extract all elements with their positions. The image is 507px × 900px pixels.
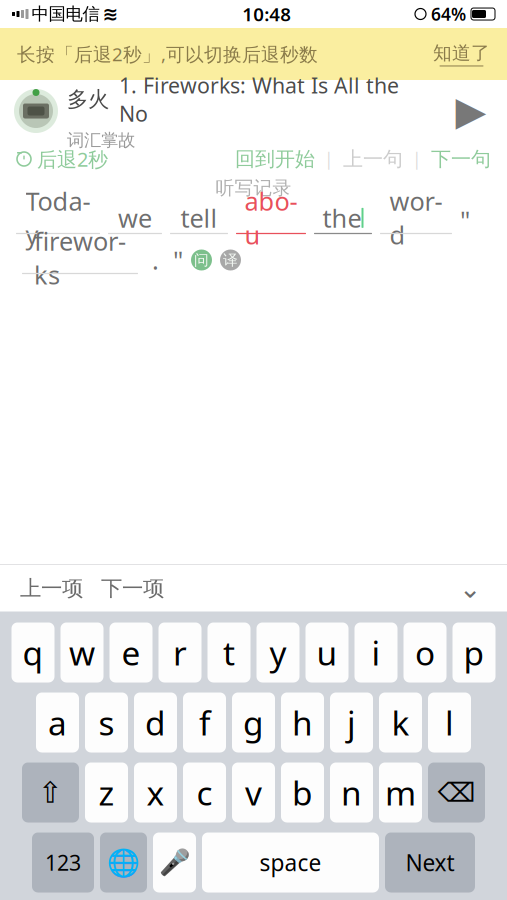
staticText: i: [371, 630, 380, 675]
staticText: |: [412, 147, 422, 170]
button[interactable]: 🎤: [153, 832, 196, 892]
staticText: n: [341, 770, 362, 815]
button[interactable]: Next: [385, 832, 475, 892]
button[interactable]: s: [85, 692, 128, 752]
staticText: 词汇掌故: [67, 130, 135, 151]
button[interactable]: 上一句: [343, 143, 403, 175]
button[interactable]: f: [183, 692, 226, 752]
staticText: 后退2秒: [37, 146, 108, 172]
staticText: 听写记录: [215, 176, 291, 199]
staticText: word: [389, 184, 442, 251]
staticText: 下一项: [101, 575, 164, 602]
button[interactable]: r: [158, 622, 201, 682]
staticText: t: [223, 630, 235, 675]
button[interactable]: 下一句: [431, 143, 491, 175]
staticText: j: [347, 700, 356, 745]
staticText: e: [121, 630, 140, 675]
staticText: q: [22, 630, 43, 675]
button[interactable]: 回到开始: [235, 143, 315, 175]
staticText: Next: [405, 847, 454, 877]
button[interactable]: 123: [32, 832, 94, 892]
button[interactable]: i: [354, 622, 397, 682]
staticText: 上一项: [20, 575, 83, 602]
button[interactable]: a: [36, 692, 79, 752]
staticText: 64%: [431, 2, 466, 25]
button[interactable]: Hide keyboard: [453, 571, 487, 605]
staticText: .: [152, 243, 159, 277]
staticText: 1. Fireworks: What Is All the No: [119, 71, 399, 128]
button[interactable]: y: [256, 622, 299, 682]
staticText: the: [322, 201, 361, 235]
button[interactable]: e: [109, 622, 152, 682]
button[interactable]: u: [305, 622, 348, 682]
staticText: w: [69, 630, 95, 675]
button[interactable]: v: [232, 762, 275, 822]
button[interactable]: o: [403, 622, 446, 682]
staticText: o: [415, 630, 435, 675]
button[interactable]: l: [428, 692, 471, 752]
staticText: space: [259, 847, 321, 877]
button[interactable]: p: [452, 622, 495, 682]
staticText: u: [316, 630, 337, 675]
button[interactable]: Play: [449, 89, 493, 133]
staticText: ": [460, 203, 470, 237]
staticText: r: [173, 630, 187, 675]
staticText: k: [391, 700, 409, 745]
staticText: ": [173, 243, 183, 277]
button[interactable]: 🌐: [100, 832, 147, 892]
staticText: ≋: [102, 3, 118, 25]
staticText: 10:48: [242, 2, 291, 26]
button[interactable]: n: [330, 762, 373, 822]
staticText: 知道了: [433, 41, 490, 64]
staticText: 中国电信: [31, 3, 99, 25]
button[interactable]: g: [232, 692, 275, 752]
staticText: 译: [223, 251, 238, 269]
staticText: y: [269, 630, 286, 675]
staticText: a: [48, 700, 67, 745]
staticText: ⌄: [459, 573, 481, 604]
staticText: l: [445, 700, 454, 745]
staticText: x: [146, 770, 164, 815]
button[interactable]: k: [379, 692, 422, 752]
button[interactable]: 问: [191, 249, 212, 270]
button[interactable]: space: [202, 832, 379, 892]
staticText: 🌐: [107, 847, 140, 878]
button[interactable]: c: [183, 762, 226, 822]
staticText: c: [196, 770, 212, 815]
button[interactable]: d: [134, 692, 177, 752]
button[interactable]: j: [330, 692, 373, 752]
staticText: tell: [180, 201, 217, 235]
staticText: |: [324, 147, 334, 170]
staticText: 长按「后退2秒」,可以切换后退秒数: [17, 42, 318, 66]
button[interactable]: t: [207, 622, 250, 682]
button[interactable]: 上一项: [20, 567, 83, 610]
staticText: b: [292, 770, 313, 815]
button[interactable]: 后退2秒: [16, 142, 108, 176]
staticText: z: [98, 770, 114, 815]
staticText: m: [385, 770, 416, 815]
button[interactable]: m: [379, 762, 422, 822]
button[interactable]: ⇧: [22, 762, 79, 822]
button[interactable]: 译: [220, 249, 241, 270]
staticText: v: [245, 770, 262, 815]
button[interactable]: z: [85, 762, 128, 822]
staticText: ⌫: [437, 777, 475, 808]
staticText: g: [243, 700, 264, 745]
button[interactable]: h: [281, 692, 324, 752]
button[interactable]: 知道了: [433, 41, 490, 66]
button[interactable]: b: [281, 762, 324, 822]
staticText: abou: [244, 184, 297, 251]
staticText: 123: [45, 848, 81, 877]
staticText: 问: [194, 251, 209, 269]
staticText: Today: [25, 184, 90, 251]
staticText: 下一句: [431, 147, 491, 171]
button[interactable]: q: [11, 622, 54, 682]
staticText: h: [292, 700, 313, 745]
staticText: s: [98, 700, 114, 745]
staticText: ▶: [455, 88, 486, 134]
staticText: f: [199, 700, 210, 745]
button[interactable]: x: [134, 762, 177, 822]
button[interactable]: ⌫: [428, 762, 485, 822]
button[interactable]: 下一项: [101, 567, 164, 610]
button[interactable]: w: [60, 622, 103, 682]
